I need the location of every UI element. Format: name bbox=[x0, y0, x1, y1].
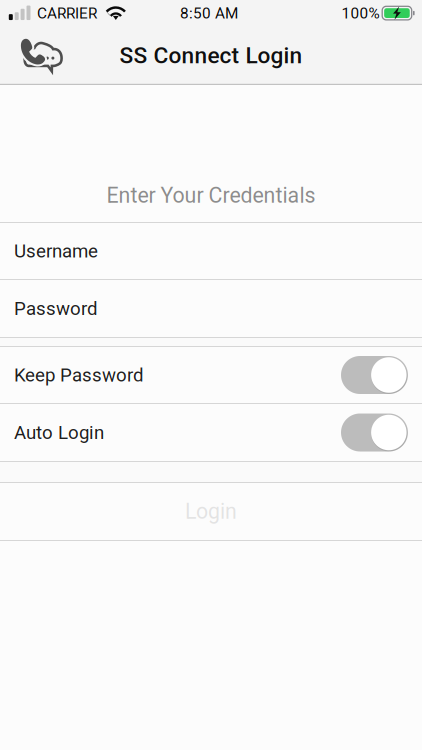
staticText: SS Connect Login bbox=[119, 42, 302, 69]
staticText: 100% bbox=[341, 4, 379, 22]
staticText: Keep Password bbox=[14, 364, 144, 386]
button[interactable]: Password bbox=[0, 280, 422, 337]
button[interactable]: Username bbox=[0, 223, 422, 279]
staticText: Login bbox=[185, 499, 237, 524]
staticText: CARRIER bbox=[37, 4, 97, 22]
staticText: 8:50 AM bbox=[180, 4, 238, 22]
button[interactable]: Keep Password bbox=[0, 347, 422, 403]
staticText: Auto Login bbox=[14, 422, 104, 443]
staticText: Password bbox=[14, 298, 98, 319]
staticText: Username bbox=[14, 240, 98, 262]
staticText: Enter Your Credentials bbox=[106, 183, 315, 208]
button[interactable]: SS Connect bbox=[0, 26, 84, 85]
button[interactable]: Auto Login bbox=[0, 404, 422, 461]
